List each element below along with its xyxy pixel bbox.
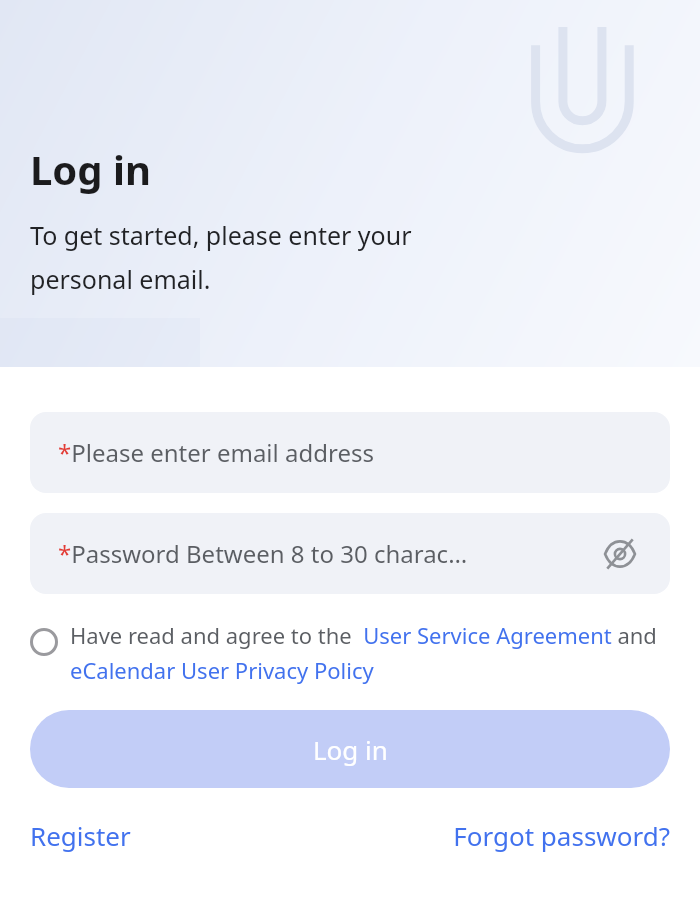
other: Agree to terms xyxy=(30,628,58,656)
staticText: Register xyxy=(30,818,131,853)
staticText: *Password Between 8 to 30 charac… xyxy=(58,537,468,570)
button[interactable]: *Please enter email address xyxy=(30,412,670,493)
button[interactable]: Forgot password? xyxy=(453,818,670,853)
button[interactable]: *Password Between 8 to 30 charac… xyxy=(30,513,670,594)
button[interactable]: Agree to terms xyxy=(30,620,670,686)
button[interactable]: Register xyxy=(30,818,131,853)
staticText: *Please enter email address xyxy=(58,436,374,469)
button[interactable]: Log in xyxy=(30,710,670,788)
staticText: Log in xyxy=(30,142,151,196)
staticText: Forgot password? xyxy=(453,818,670,853)
button[interactable]: Show password xyxy=(598,532,642,576)
staticText: Log in xyxy=(313,732,388,767)
staticText: To get started, please enter your person… xyxy=(30,218,412,296)
staticText: Have read and agree to the User Service … xyxy=(70,620,670,686)
